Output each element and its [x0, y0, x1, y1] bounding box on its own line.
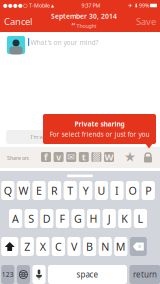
- button[interactable]: Share on Tumblr: [79, 152, 89, 162]
- staticText: “: [71, 21, 75, 31]
- button[interactable]: H: [87, 209, 100, 228]
- staticText: R: [51, 183, 58, 198]
- staticText: space: [76, 269, 98, 280]
- button[interactable]: J: [103, 209, 116, 228]
- staticText: T-Mobile: [28, 2, 51, 9]
- button[interactable]: 123: [1, 265, 14, 284]
- staticText: M: [116, 239, 126, 254]
- staticText: B: [86, 239, 93, 254]
- button[interactable]: R: [48, 181, 61, 200]
- staticText: For select friends or just for you: [49, 130, 149, 139]
- staticText: L: [137, 211, 143, 226]
- button[interactable]: Share on WordPress: [104, 152, 114, 162]
- staticText: F: [59, 211, 65, 226]
- staticText: C: [55, 239, 62, 254]
- button[interactable]: space: [48, 265, 127, 284]
- button[interactable]: T: [64, 181, 77, 200]
- staticText: September 30, 2014: [51, 12, 117, 21]
- button[interactable]: Dictation: [32, 265, 46, 284]
- button[interactable]: Switch keyboard: [17, 265, 30, 284]
- staticText: Y: [83, 183, 89, 198]
- button[interactable]: F: [56, 209, 69, 228]
- staticText: ▒: [93, 152, 100, 162]
- button[interactable]: Share by email: [66, 152, 76, 162]
- staticText: S: [28, 211, 34, 226]
- staticText: Private sharing: [74, 119, 124, 128]
- staticText: ×: [138, 242, 142, 251]
- staticText: I: [115, 183, 119, 198]
- button[interactable]: G: [71, 209, 85, 228]
- staticText: ●●●●○: [3, 2, 28, 9]
- staticText: ▲: [51, 3, 54, 8]
- staticText: W: [104, 151, 113, 163]
- button[interactable]: Private sharing: [142, 151, 154, 163]
- staticText: K: [121, 211, 128, 226]
- button[interactable]: I: [110, 181, 124, 200]
- staticText: ᴠ: [56, 151, 61, 163]
- staticText: X: [40, 239, 46, 254]
- button[interactable]: Y: [79, 181, 92, 200]
- button[interactable]: Share on Flickr: [91, 152, 101, 162]
- button[interactable]: return: [129, 265, 160, 284]
- button[interactable]: K: [118, 209, 131, 228]
- button[interactable]: O: [126, 181, 139, 200]
- button[interactable]: V: [67, 237, 81, 256]
- staticText: D: [43, 211, 51, 226]
- button[interactable]: E: [32, 181, 46, 200]
- staticText: ★: [124, 149, 136, 164]
- staticText: 9:37 PM: [81, 2, 100, 9]
- button[interactable]: Delete: [130, 237, 147, 256]
- button[interactable]: Share on Facebook: [41, 152, 51, 162]
- button[interactable]: U: [95, 181, 108, 200]
- button[interactable]: W: [17, 181, 30, 200]
- button[interactable]: A: [9, 209, 22, 228]
- staticText: Q: [4, 183, 12, 198]
- staticText: f: [44, 151, 48, 163]
- staticText: A: [12, 211, 19, 226]
- button[interactable]: D: [40, 209, 53, 228]
- staticText: J: [108, 211, 111, 226]
- button[interactable]: Favorite: [124, 151, 136, 163]
- button[interactable]: Shift: [1, 237, 18, 256]
- button[interactable]: L: [134, 209, 147, 228]
- button[interactable]: N: [99, 237, 112, 256]
- staticText: t: [82, 151, 86, 163]
- staticText: N: [101, 239, 109, 254]
- button[interactable]: C: [52, 237, 65, 256]
- button[interactable]: M: [114, 237, 127, 256]
- staticText: return: [133, 269, 157, 280]
- staticText: Z: [24, 239, 30, 254]
- staticText: What's on your mind?: [30, 38, 98, 47]
- button[interactable]: Save: [132, 11, 160, 31]
- staticText: ✉: [67, 152, 75, 162]
- staticText: Thought: [76, 22, 96, 29]
- staticText: Save: [136, 15, 156, 28]
- staticText: Cancel: [4, 15, 32, 28]
- staticText: W: [18, 183, 28, 198]
- button[interactable]: I'm with: [6, 130, 74, 144]
- staticText: G: [74, 211, 82, 226]
- staticText: V: [71, 239, 77, 254]
- button[interactable]: X: [36, 237, 49, 256]
- staticText: T: [67, 183, 73, 198]
- staticText: Share on:: [7, 154, 29, 162]
- staticText: 123: [2, 270, 14, 279]
- staticText: ✈ ⬇ 99%: [128, 2, 150, 9]
- staticText: H: [90, 211, 98, 226]
- staticText: I'm with: [30, 133, 49, 141]
- staticText: O: [129, 183, 137, 198]
- button[interactable]: B: [83, 237, 96, 256]
- button[interactable]: S: [25, 209, 38, 228]
- button[interactable]: Share on Twitter: [54, 152, 64, 162]
- staticText: P: [145, 183, 151, 198]
- button[interactable]: P: [142, 181, 155, 200]
- staticText: E: [36, 183, 42, 198]
- button[interactable]: Q: [1, 181, 14, 200]
- button[interactable]: Z: [21, 237, 34, 256]
- button[interactable]: Cancel: [0, 11, 36, 31]
- staticText: U: [97, 183, 105, 198]
